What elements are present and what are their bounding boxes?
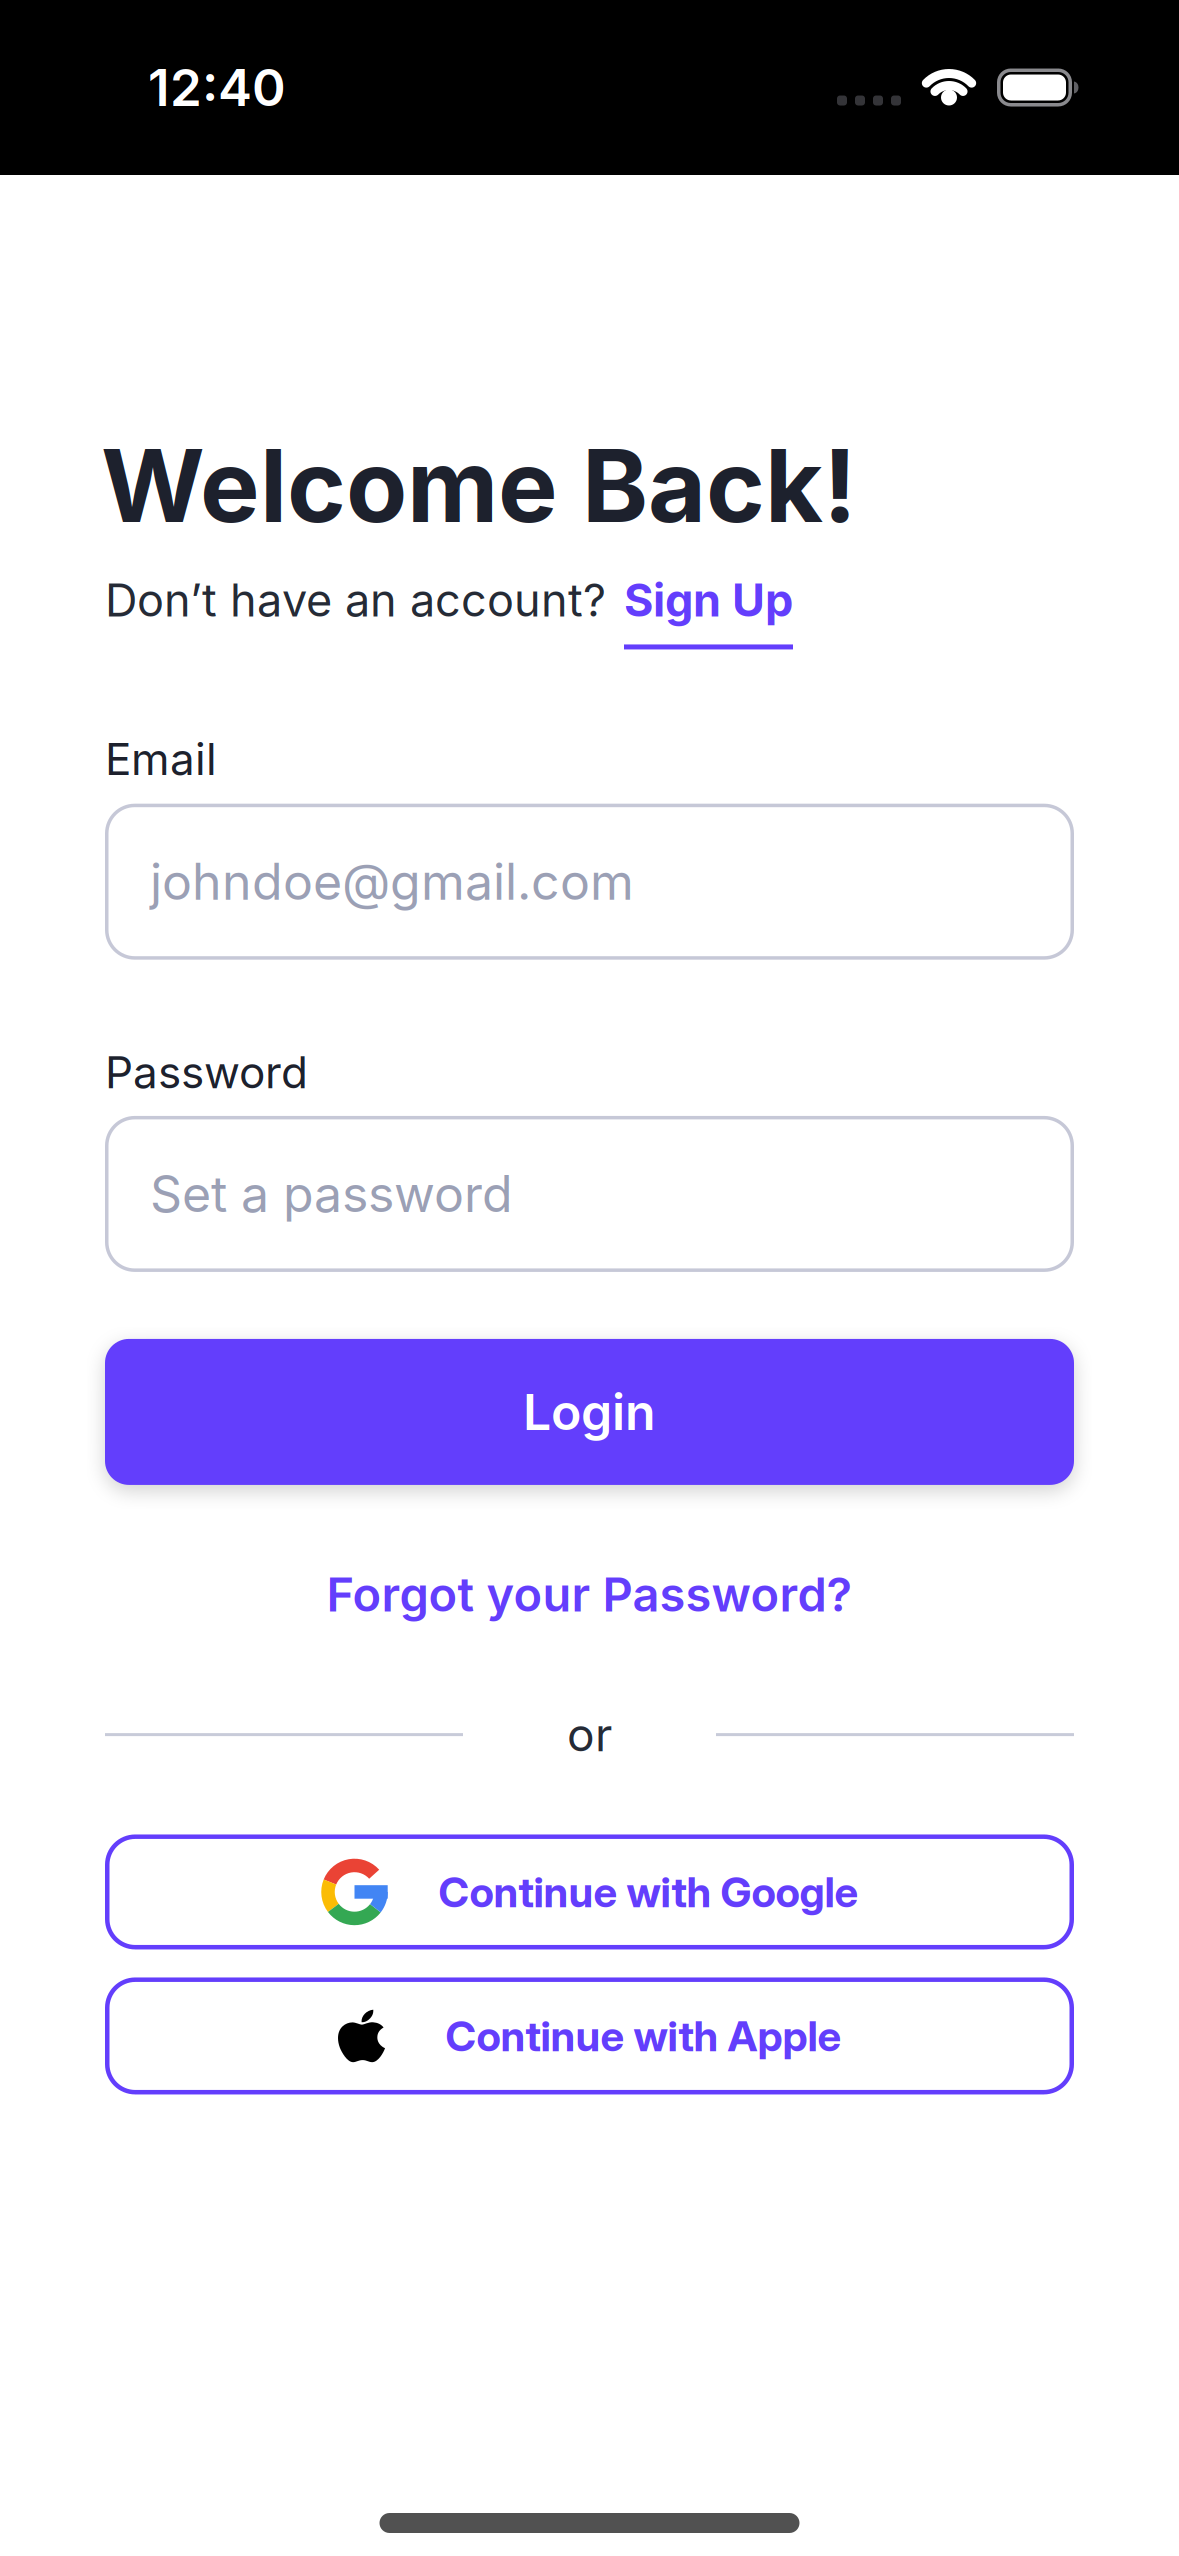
staticText: Continue with Apple	[445, 2010, 841, 2061]
staticText: johndoe@gmail.com	[150, 851, 634, 912]
staticText: Email	[105, 732, 217, 786]
staticText: Don’t have an account?	[105, 573, 606, 627]
staticText: Sign Up	[624, 573, 793, 627]
button[interactable]: Forgot your Password?	[326, 1566, 852, 1623]
staticText: Welcome Back!	[101, 425, 857, 546]
button[interactable]: Continue with Google	[105, 1834, 1074, 1949]
staticText: Login	[523, 1382, 656, 1442]
staticText: or	[567, 1707, 612, 1762]
staticText: Forgot your Password?	[326, 1566, 852, 1623]
staticText: Set a password	[150, 1164, 513, 1224]
staticText: 12:40	[148, 57, 286, 118]
button[interactable]: Login	[105, 1339, 1074, 1485]
button[interactable]: Sign Up	[624, 573, 793, 627]
staticText: Continue with Google	[438, 1866, 858, 1917]
button[interactable]: Continue with Apple	[105, 1977, 1074, 2094]
staticText: Password	[105, 1046, 308, 1099]
